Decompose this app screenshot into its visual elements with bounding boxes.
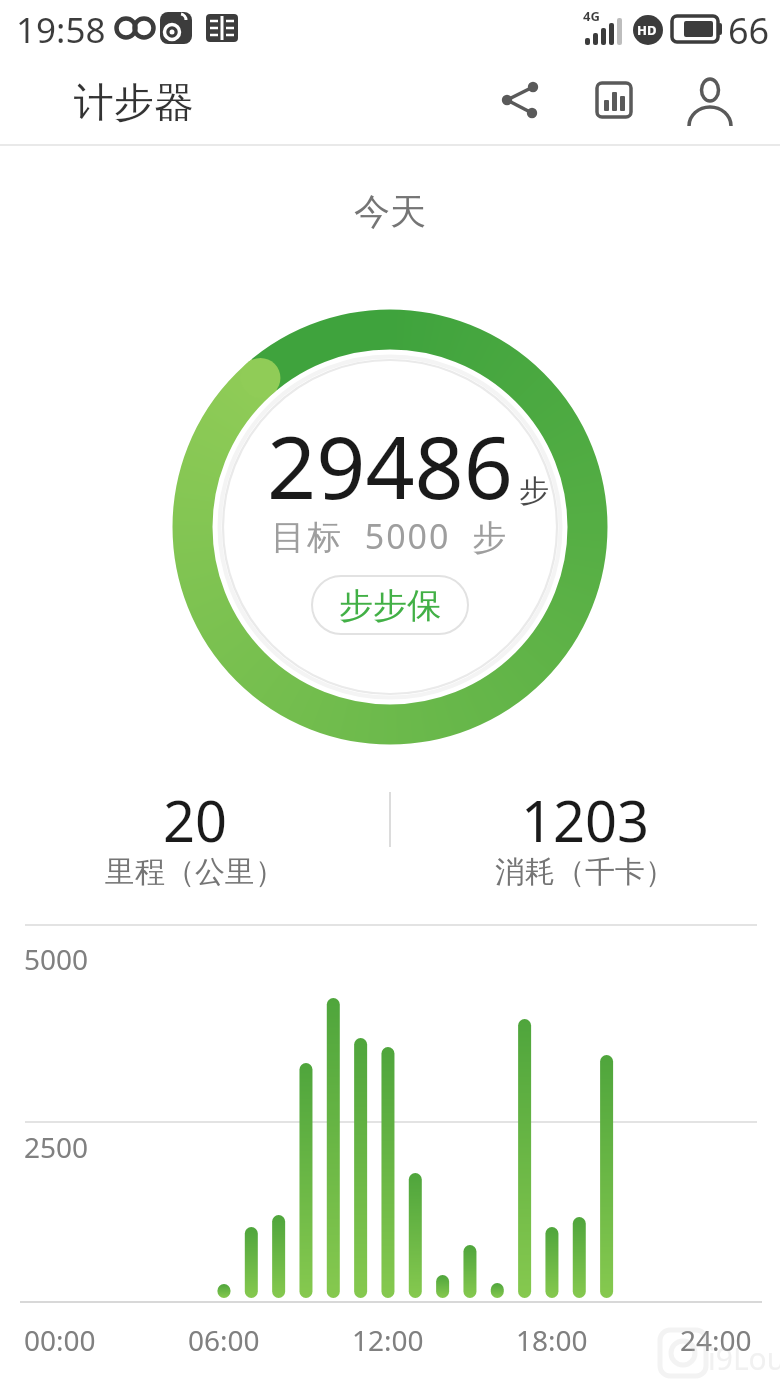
- button[interactable]: [686, 76, 734, 124]
- staticText: 步: [519, 472, 549, 510]
- staticText: 今天: [354, 189, 426, 234]
- button[interactable]: [590, 76, 638, 124]
- staticText: 06:00: [188, 1321, 260, 1359]
- staticText: 12:00: [352, 1321, 424, 1359]
- staticText: 计步器: [74, 77, 194, 127]
- staticText: 19:58: [16, 6, 106, 54]
- staticText: 66: [728, 6, 770, 55]
- staticText: 29486: [267, 407, 513, 524]
- staticText: 4G: [583, 7, 600, 25]
- staticText: HD: [637, 21, 657, 39]
- staticText: i9Lou: [708, 1338, 780, 1379]
- staticText: 里程（公里）: [105, 853, 285, 891]
- staticText: 目标 5000 步: [271, 513, 509, 559]
- staticText: 5000: [24, 940, 89, 978]
- button[interactable]: 步步保: [311, 575, 469, 635]
- staticText: 18:00: [516, 1321, 588, 1359]
- staticText: 2500: [24, 1128, 89, 1166]
- staticText: 消耗（千卡）: [495, 853, 675, 891]
- button[interactable]: [498, 76, 546, 124]
- staticText: 步步保: [339, 584, 441, 627]
- staticText: 00:00: [24, 1321, 96, 1359]
- staticText: 20: [163, 782, 228, 858]
- staticText: 24:00: [680, 1321, 752, 1359]
- staticText: 1203: [521, 782, 650, 858]
